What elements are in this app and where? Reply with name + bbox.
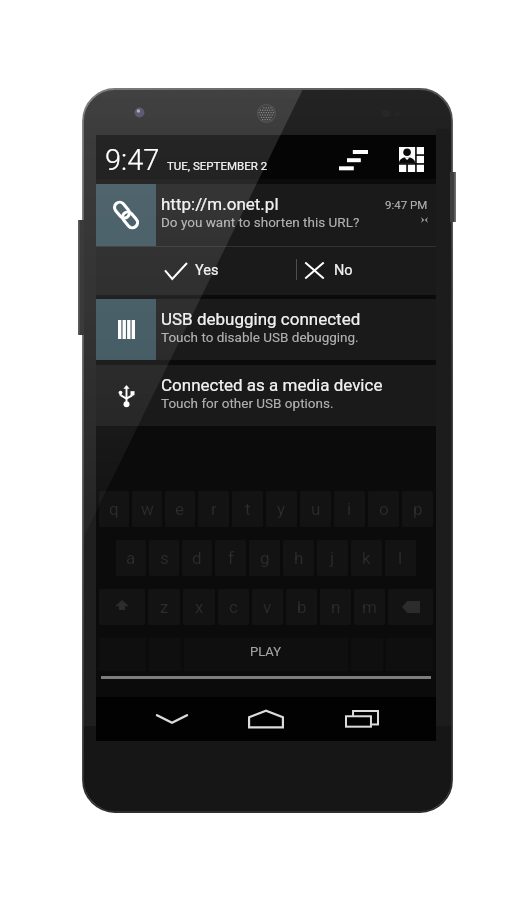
staticText: USB debugging connected [161,309,361,329]
staticText: w [141,499,154,519]
staticText: n [331,597,341,617]
staticText: r [211,499,217,519]
staticText: PLAY [250,644,282,659]
staticText: Yes [195,262,219,279]
staticText: t [245,499,251,519]
button[interactable]: Yes [156,246,286,295]
staticText: o [379,499,389,519]
staticText: e [175,499,185,519]
staticText: i [347,499,352,519]
staticText: Touch for other USB options. [161,395,334,411]
staticText: m [362,597,377,617]
button[interactable]: Connected as a media device [96,365,436,426]
button[interactable]: Clear all notifications [334,145,373,175]
staticText: p [413,499,423,519]
staticText: TUE, SEPTEMBER 2 [167,159,268,172]
button[interactable]: Home [234,697,298,741]
staticText: 9:47 [105,143,160,177]
staticText: h [294,548,304,568]
staticText: k [362,548,371,568]
staticText: http://m.onet.pl [161,194,279,214]
staticText: f [228,548,234,568]
staticText: 9:47 PM [385,198,428,211]
button[interactable]: Back [140,697,204,741]
staticText: c [229,597,238,617]
button[interactable]: No [299,246,429,295]
staticText: u [311,499,321,519]
staticText: d [192,548,202,568]
staticText: q [109,499,119,519]
staticText: x [195,597,204,617]
staticText: Do you want to shorten this URL? [161,214,360,230]
staticText: v [263,597,272,617]
button[interactable]: Quick settings [393,143,430,176]
button[interactable]: Recent apps [330,697,394,741]
staticText: b [297,597,307,617]
staticText: g [260,548,270,568]
staticText: Touch to disable USB debugging. [161,329,359,345]
staticText: No [334,262,353,279]
staticText: Connected as a media device [161,375,383,395]
button[interactable]: USB debugging connected [96,299,436,360]
staticText: s [160,548,169,568]
staticText: a [126,548,136,568]
staticText: l [398,548,403,568]
staticText: z [160,597,169,617]
staticText: y [277,499,286,519]
staticText: j [330,548,335,568]
button[interactable]: http://m.onet.pl [96,184,436,246]
